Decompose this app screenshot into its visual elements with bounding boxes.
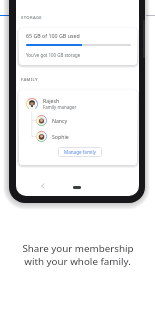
staticText: You've got 100 GB storage [26,52,81,58]
button[interactable]: Home [73,186,81,189]
button[interactable]: Nancy [36,115,68,126]
button[interactable]: Rajesh [26,97,77,110]
staticText: FAMILY [21,77,38,83]
button[interactable]: Sophie [36,131,69,142]
staticText: Manage family [64,149,96,155]
staticText: Family manager [43,104,77,110]
staticText: Share your membership [22,242,134,255]
staticText: Sophie [52,133,69,140]
staticText: 65 GB of 100 GB used [26,32,80,39]
staticText: STORAGE [21,15,42,21]
button[interactable]: Back [39,182,47,190]
staticText: Rajesh [43,97,60,104]
staticText: Nancy [52,117,68,124]
button[interactable]: Manage family [58,147,102,157]
staticText: with your whole family. [24,255,131,268]
